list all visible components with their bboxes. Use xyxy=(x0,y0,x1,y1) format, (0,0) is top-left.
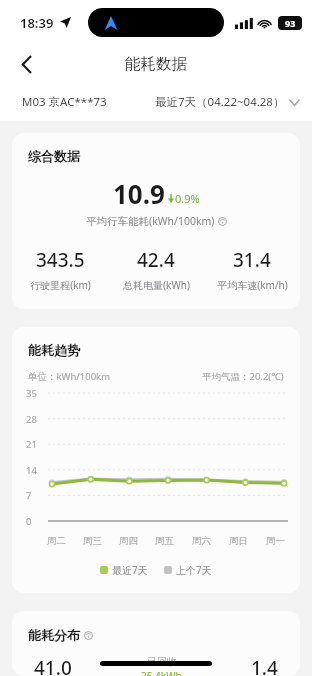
staticText: 18:39 xyxy=(20,14,54,32)
staticText: 7 xyxy=(26,489,32,502)
staticText: 周三 xyxy=(83,535,102,547)
staticText: 周六 xyxy=(192,535,211,547)
staticText: 能耗趋势 xyxy=(28,342,80,358)
staticText: 平均行车能耗(kWh/100km) xyxy=(86,214,215,228)
staticText: 行驶里程(km) xyxy=(30,278,91,292)
staticText: 93 xyxy=(285,17,296,29)
button[interactable]: 最近7天（04.22~04.28） xyxy=(155,94,300,110)
staticText: 平均车速(km/h) xyxy=(217,278,288,292)
button[interactable]: Back xyxy=(8,46,44,82)
staticText: 总耗电量(kWh) xyxy=(123,278,190,292)
staticText: 343.5 xyxy=(36,247,85,273)
staticText: 最近7天 xyxy=(112,563,148,577)
staticText: 14 xyxy=(26,464,37,477)
staticText: 21 xyxy=(26,438,37,451)
staticText: 周五 xyxy=(155,535,174,547)
staticText: 能耗分布 xyxy=(28,627,80,643)
staticText: 已回收 xyxy=(147,655,177,668)
staticText: 10.9 xyxy=(113,176,165,211)
staticText: 42.4 xyxy=(137,247,175,273)
staticText: 单位：kWh/100km xyxy=(28,370,111,383)
staticText: 1.4 xyxy=(251,655,278,676)
staticText: 周四 xyxy=(119,535,138,547)
staticText: 能耗数据 xyxy=(125,54,187,74)
staticText: 周日 xyxy=(229,535,248,547)
button[interactable]: M03 京AC***73 xyxy=(22,94,107,110)
staticText: 综合数据 xyxy=(28,148,80,164)
staticText: 28 xyxy=(26,413,37,426)
staticText: 周二 xyxy=(47,535,66,547)
staticText: 35 xyxy=(26,387,37,400)
staticText: 0 xyxy=(26,515,32,528)
staticText: 25.4kWh xyxy=(141,669,182,676)
staticText: 平均气温：20.2(℃) xyxy=(202,370,284,383)
staticText: 31.4 xyxy=(233,247,271,273)
staticText: 41.0 xyxy=(34,655,72,676)
staticText: 最近7天（04.22~04.28） xyxy=(155,94,285,110)
staticText: 周一 xyxy=(266,535,285,547)
staticText: 上个7天 xyxy=(176,563,212,577)
staticText: 0.9% xyxy=(175,191,200,206)
